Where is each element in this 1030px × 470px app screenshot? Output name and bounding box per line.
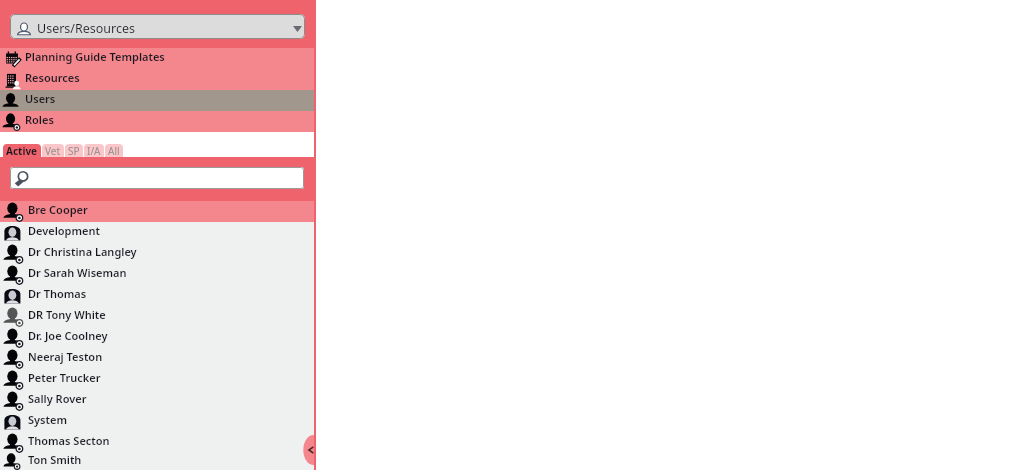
button[interactable]	[10, 167, 304, 189]
staticText: Roles	[25, 112, 54, 127]
staticText: Dr Sarah Wiseman	[28, 265, 127, 280]
button[interactable]: DR Tony White	[0, 306, 316, 327]
staticText: Resources	[25, 70, 80, 85]
staticText: Ton Smith	[28, 452, 82, 467]
button[interactable]: I/A	[84, 144, 104, 157]
staticText: SP	[68, 144, 80, 157]
staticText: Active	[6, 144, 38, 157]
staticText: All	[108, 144, 120, 157]
staticText: Neeraj Teston	[28, 349, 103, 364]
button[interactable]: Dr Sarah Wiseman	[0, 264, 316, 285]
staticText: I/A	[87, 144, 101, 157]
button[interactable]: SP	[65, 144, 83, 157]
button[interactable]: Collapse panel	[303, 435, 314, 465]
staticText: Planning Guide Templates	[25, 49, 165, 64]
button[interactable]: Development	[0, 222, 316, 243]
button[interactable]: Peter Trucker	[0, 369, 316, 390]
button[interactable]: Roles	[0, 111, 316, 132]
button[interactable]: Planning Guide Templates	[0, 48, 316, 69]
staticText: Dr Thomas	[28, 286, 87, 301]
button[interactable]: Dr Thomas	[0, 285, 316, 306]
button[interactable]: Vet	[42, 144, 64, 157]
button[interactable]: Ton Smith	[0, 453, 316, 470]
button[interactable]: Users	[0, 90, 316, 111]
staticText: Peter Trucker	[28, 370, 101, 385]
staticText: Development	[28, 223, 100, 238]
button[interactable]: Neeraj Teston	[0, 348, 316, 369]
button[interactable]: Sally Rover	[0, 390, 316, 411]
button[interactable]: Resources	[0, 69, 316, 90]
staticText: DR Tony White	[28, 307, 106, 322]
staticText: Vet	[45, 144, 61, 157]
staticText: Bre Cooper	[28, 202, 88, 217]
button[interactable]: Bre Cooper	[0, 201, 316, 222]
staticText: Users/Resources	[37, 20, 136, 37]
staticText: Thomas Secton	[28, 433, 110, 448]
button[interactable]: System	[0, 411, 316, 432]
button[interactable]: Active	[3, 144, 41, 157]
staticText: Users	[25, 91, 56, 106]
staticText: Dr. Joe Coolney	[28, 328, 108, 343]
button[interactable]: Dr Christina Langley	[0, 243, 316, 264]
button[interactable]: All	[105, 144, 123, 157]
staticText: System	[28, 412, 67, 427]
staticText: Dr Christina Langley	[28, 244, 137, 259]
button[interactable]: Users/Resources	[10, 14, 305, 39]
button[interactable]: Thomas Secton	[0, 432, 316, 453]
staticText: Sally Rover	[28, 391, 87, 406]
button[interactable]: Dr. Joe Coolney	[0, 327, 316, 348]
